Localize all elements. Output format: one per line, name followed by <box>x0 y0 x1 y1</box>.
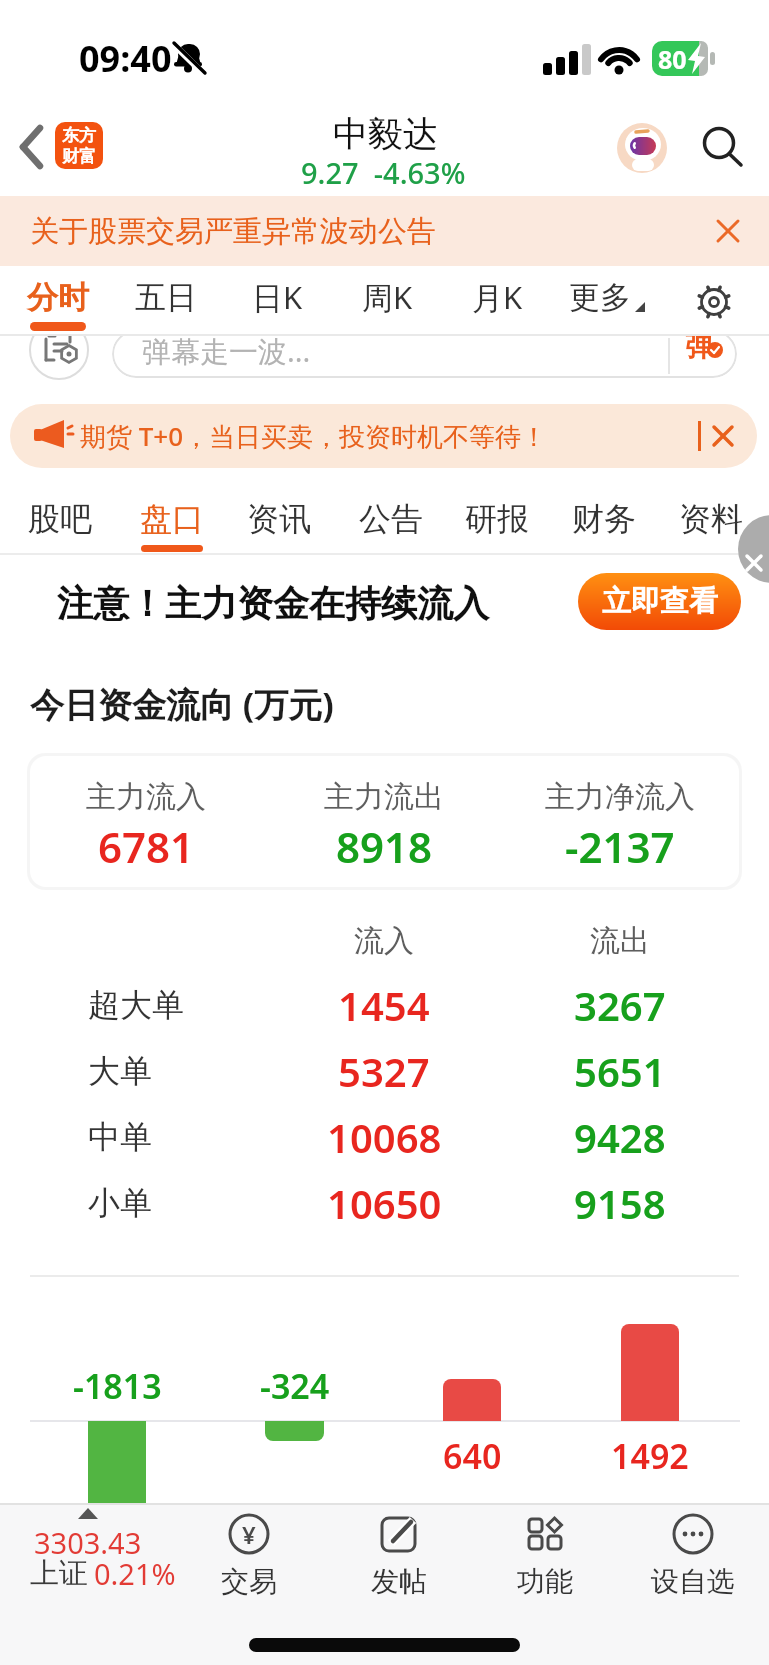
staticText: 弹幕走一波... <box>142 336 311 371</box>
staticText: 注意！主力资金在持续流入 <box>57 581 489 626</box>
button[interactable]: 周K <box>342 267 432 327</box>
staticText: 1454 <box>338 978 430 1032</box>
staticText: 日K <box>252 276 303 318</box>
staticText: 上证 <box>30 1555 88 1592</box>
button[interactable]: 资讯 <box>229 489 329 549</box>
staticText: 3267 <box>574 978 666 1032</box>
button[interactable] <box>698 120 750 174</box>
staticText: 资讯 <box>247 499 311 539</box>
staticText: 发帖 <box>371 1564 427 1599</box>
staticText: 10650 <box>327 1176 442 1230</box>
staticText: 月K <box>472 276 523 318</box>
staticText: 立即查看 <box>602 583 718 620</box>
staticText: ¥ <box>242 1518 256 1551</box>
staticText: 交易 <box>221 1564 277 1599</box>
button[interactable]: 月K <box>452 267 542 327</box>
staticText: 研报 <box>465 499 529 539</box>
button[interactable]: 资料 <box>661 489 761 549</box>
staticText: 超大单 <box>88 985 184 1025</box>
staticText: 5651 <box>574 1044 666 1098</box>
button[interactable]: 功能 <box>495 1508 595 1600</box>
staticText: 3303.43 <box>34 1523 142 1562</box>
staticText: 0.21% <box>94 1554 176 1593</box>
staticText: 9158 <box>574 1176 666 1230</box>
button[interactable] <box>692 280 736 324</box>
staticText: 设自选 <box>651 1564 735 1599</box>
staticText: 1492 <box>611 1433 689 1479</box>
staticText: 9.27 -4.63% <box>301 153 466 192</box>
staticText: 周K <box>362 276 413 318</box>
button[interactable]: 发帖 <box>349 1508 449 1600</box>
button[interactable]: 公告 <box>341 489 441 549</box>
button[interactable]: 日K <box>232 267 322 327</box>
button[interactable]: 财务 <box>554 489 654 549</box>
staticText: 小单 <box>88 1183 152 1223</box>
staticText: 主力流入 <box>86 778 206 816</box>
staticText: 功能 <box>517 1564 573 1599</box>
button[interactable]: 盘口 <box>122 489 222 549</box>
staticText: 财务 <box>572 499 636 539</box>
button[interactable]: 设自选 <box>643 1508 743 1600</box>
button[interactable]: 弹幕走一波... <box>112 336 737 378</box>
staticText: 9428 <box>574 1110 666 1164</box>
button[interactable]: 更多 <box>555 267 645 327</box>
staticText: 5327 <box>338 1044 430 1098</box>
button[interactable] <box>616 122 668 174</box>
staticText: 中毅达 <box>333 112 438 156</box>
staticText: 大单 <box>88 1051 152 1091</box>
button[interactable]: 交易 <box>199 1508 299 1600</box>
staticText: 公告 <box>359 499 423 539</box>
staticText: 资料 <box>679 499 743 539</box>
staticText: 主力流出 <box>324 778 444 816</box>
button[interactable]: 关于股票交易严重异常波动公告 <box>0 196 769 266</box>
button[interactable]: 分时 <box>13 267 103 327</box>
staticText: -1813 <box>73 1363 162 1409</box>
staticText: 80 <box>658 42 687 76</box>
staticText: 8918 <box>336 818 433 875</box>
button[interactable]: 研报 <box>447 489 547 549</box>
staticText: 今日资金流向 (万元) <box>30 681 334 727</box>
staticText: 更多 <box>569 278 631 317</box>
button[interactable]: 股吧 <box>10 489 110 549</box>
staticText: 股吧 <box>28 499 92 539</box>
staticText: 关于股票交易严重异常波动公告 <box>30 213 436 250</box>
button[interactable]: 期货 T+0，当日买卖，投资时机不等待！ <box>10 404 757 468</box>
staticText: -2137 <box>565 818 675 875</box>
staticText: 财富 <box>62 146 96 167</box>
staticText: 主力净流入 <box>545 778 695 816</box>
staticText: 期货 T+0，当日买卖，投资时机不等待！ <box>80 418 548 454</box>
staticText: 6781 <box>98 818 195 875</box>
staticText: 640 <box>443 1433 502 1479</box>
staticText: 中单 <box>88 1117 152 1157</box>
button[interactable]: 东方 <box>55 122 103 169</box>
button[interactable] <box>14 1505 174 1597</box>
staticText: 弹 <box>685 336 713 364</box>
staticText: 10068 <box>327 1110 442 1164</box>
staticText: 五日 <box>135 278 197 317</box>
button[interactable]: 注意！主力资金在持续流入 <box>0 555 769 660</box>
staticText: 分时 <box>27 278 89 317</box>
staticText: 盘口 <box>140 499 204 539</box>
staticText: 流入 <box>354 922 414 960</box>
button[interactable] <box>10 120 54 176</box>
staticText: 流出 <box>590 922 650 960</box>
staticText: 东方 <box>62 125 96 146</box>
staticText: -324 <box>260 1363 330 1409</box>
staticText: 09:40 <box>79 34 172 83</box>
button[interactable]: 五日 <box>121 267 211 327</box>
